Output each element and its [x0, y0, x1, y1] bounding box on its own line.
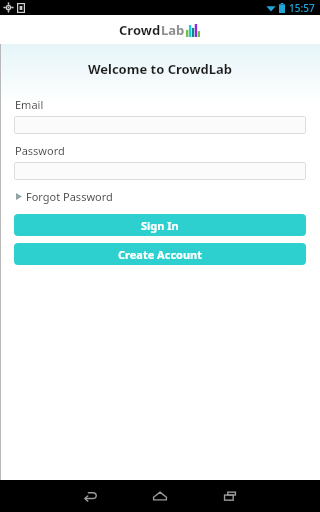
staticText: Create Account: [118, 247, 203, 262]
button[interactable]: Create Account: [14, 243, 306, 265]
staticText: Password: [15, 143, 65, 158]
button[interactable]: Home: [145, 481, 175, 511]
staticText: Lab: [161, 21, 185, 39]
staticText: Welcome to CrowdLab: [0, 60, 320, 78]
button[interactable]: Forgot Password: [13, 186, 116, 207]
button[interactable]: Back: [75, 481, 105, 511]
button[interactable]: [14, 116, 306, 134]
staticText: Forgot Password: [26, 189, 113, 204]
button[interactable]: Sign In: [14, 214, 306, 236]
staticText: Crowd: [119, 21, 161, 39]
staticText: Sign In: [141, 218, 179, 233]
staticText: 15:57: [289, 1, 315, 15]
staticText: Email: [15, 97, 44, 112]
button[interactable]: Recent apps: [215, 481, 245, 511]
button[interactable]: [14, 162, 306, 180]
